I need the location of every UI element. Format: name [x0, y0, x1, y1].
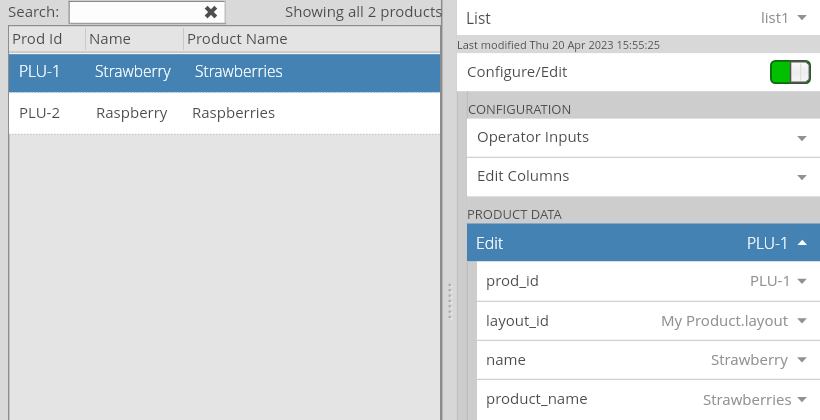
- staticText: Strawberries: [195, 60, 283, 81]
- button[interactable]: [467, 157, 820, 196]
- staticText: Last modified Thu 20 Apr 2023 15:55:25: [457, 37, 661, 52]
- staticText: layout_id: [486, 310, 549, 330]
- button[interactable]: [467, 223, 820, 261]
- staticText: list1: [761, 7, 790, 27]
- button[interactable]: [477, 379, 820, 420]
- staticText: Prod Id: [12, 28, 63, 48]
- staticText: product_name: [486, 388, 588, 408]
- staticText: PLU-2: [19, 102, 60, 122]
- button[interactable]: [9, 54, 440, 92]
- button[interactable]: [467, 118, 820, 157]
- staticText: Edit Columns: [477, 165, 570, 185]
- staticText: Operator Inputs: [477, 126, 590, 146]
- staticText: prod_id: [486, 270, 539, 290]
- button[interactable]: [477, 340, 820, 379]
- staticText: PLU-1: [747, 232, 789, 253]
- button[interactable]: Configure/Edit toggle: [770, 60, 811, 84]
- staticText: Name: [89, 28, 132, 48]
- staticText: Edit: [476, 232, 504, 254]
- staticText: ✖: [203, 1, 219, 23]
- button[interactable]: [457, 53, 820, 91]
- staticText: PRODUCT DATA: [467, 205, 562, 223]
- staticText: List: [466, 7, 491, 28]
- staticText: Raspberry: [96, 102, 168, 122]
- button[interactable]: [477, 301, 820, 340]
- button[interactable]: Clear search: [202, 4, 220, 22]
- staticText: Raspberries: [192, 102, 276, 122]
- button[interactable]: [477, 261, 820, 301]
- staticText: Showing all 2 products: [285, 1, 443, 21]
- staticText: Configure/Edit: [467, 61, 568, 81]
- staticText: Search:: [8, 1, 60, 21]
- staticText: PLU-1: [19, 60, 61, 81]
- staticText: Strawberry: [711, 349, 788, 369]
- staticText: My Product.layout: [661, 310, 788, 330]
- staticText: Strawberry: [95, 60, 171, 81]
- staticText: CONFIGURATION: [468, 100, 572, 118]
- staticText: PLU-1: [750, 270, 791, 290]
- button[interactable]: [457, 0, 820, 35]
- staticText: Strawberries: [703, 389, 792, 409]
- staticText: Product Name: [187, 28, 288, 48]
- staticText: name: [486, 349, 526, 369]
- button[interactable]: [9, 93, 440, 134]
